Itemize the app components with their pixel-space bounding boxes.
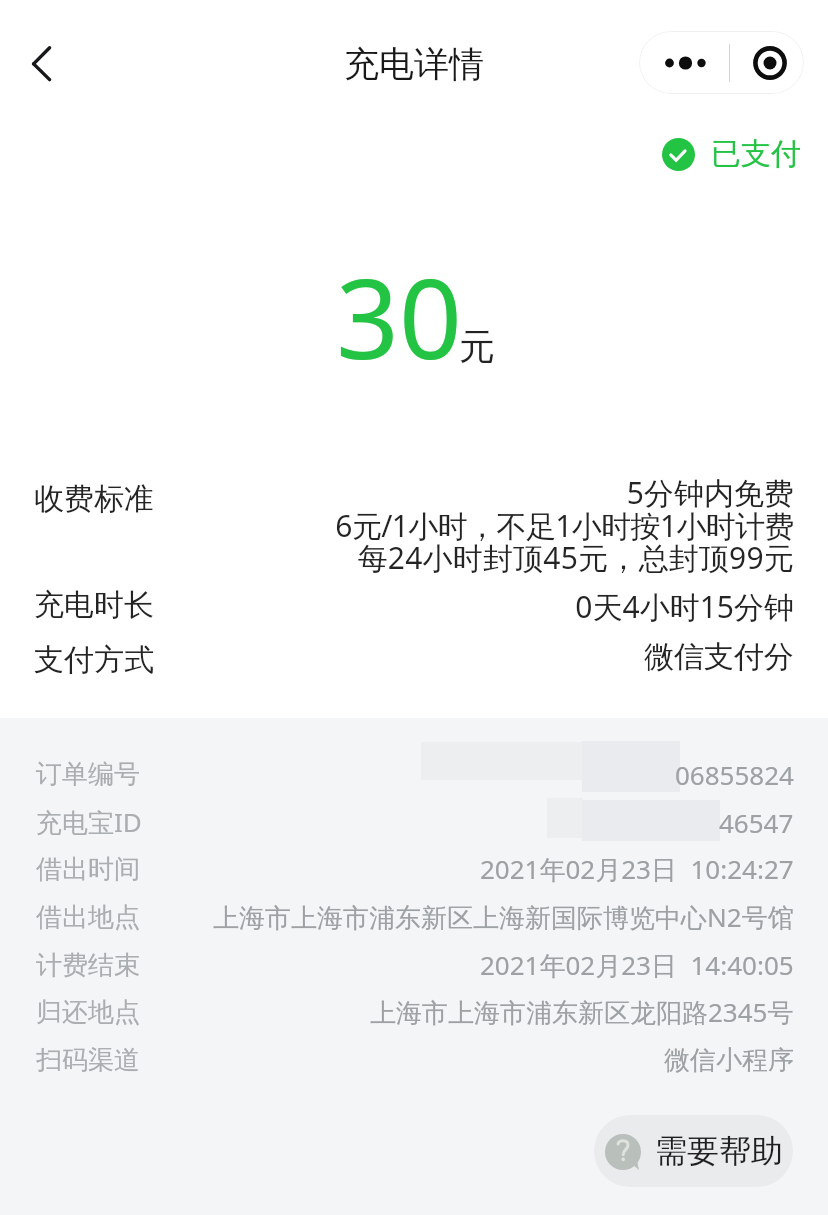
staticText: 30 bbox=[336, 241, 462, 391]
staticText: 6元/1小时，不足1小时按1小时计费 bbox=[34, 505, 794, 546]
staticText: 微信小程序 bbox=[664, 1044, 794, 1077]
staticText: 每24小时封顶45元，总封顶99元 bbox=[34, 537, 794, 578]
staticText: 元 bbox=[459, 324, 495, 369]
staticText: 已支付 bbox=[711, 135, 801, 173]
staticText: 06855824 bbox=[675, 757, 794, 792]
button[interactable]: 需要帮助 bbox=[594, 1115, 793, 1187]
staticText: 0天4小时15分钟 bbox=[34, 586, 794, 627]
staticText: 充电时长 bbox=[34, 586, 154, 624]
staticText: 借出时间 bbox=[36, 853, 140, 886]
button[interactable]: More bbox=[639, 31, 729, 94]
staticText: 2021年02月23日 10:24:27 bbox=[480, 851, 794, 887]
staticText: 支付方式 bbox=[34, 641, 154, 679]
button[interactable]: Back bbox=[8, 34, 68, 94]
staticText: 上海市上海市浦东新区龙阳路2345号 bbox=[370, 994, 794, 1030]
staticText: 微信支付分 bbox=[34, 638, 794, 676]
staticText: 归还地点 bbox=[36, 996, 140, 1029]
staticText: 借出地点 bbox=[36, 901, 140, 934]
staticText: 5分钟内免费 bbox=[34, 472, 794, 513]
staticText: 扫码渠道 bbox=[36, 1044, 140, 1077]
staticText: 收费标准 bbox=[34, 480, 154, 518]
staticText: 计费结束 bbox=[36, 949, 140, 982]
staticText: 订单编号 bbox=[36, 758, 140, 791]
staticText: 充电详情 bbox=[344, 42, 484, 86]
staticText: 46547 bbox=[719, 805, 794, 840]
staticText: 充电宝ID bbox=[36, 804, 142, 840]
button[interactable]: Close mini program bbox=[730, 31, 804, 94]
staticText: 需要帮助 bbox=[655, 1131, 783, 1171]
staticText: 2021年02月23日 14:40:05 bbox=[480, 947, 794, 983]
staticText: 上海市上海市浦东新区上海新国际博览中心N2号馆 bbox=[213, 899, 794, 935]
